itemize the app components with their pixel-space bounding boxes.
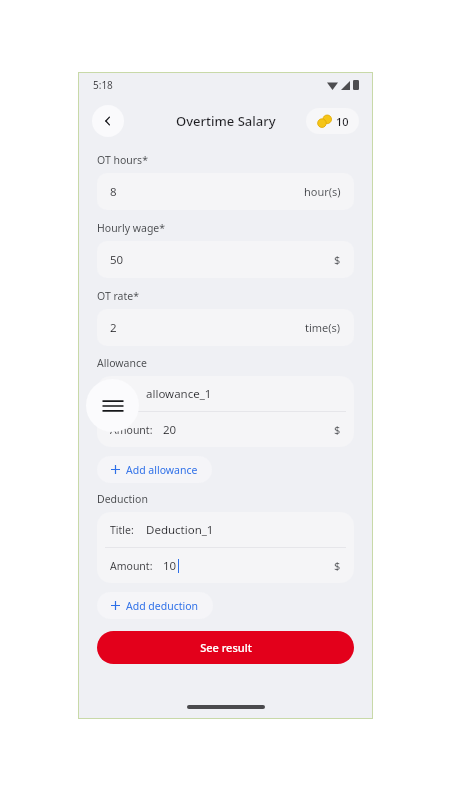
staticText: 5:18 xyxy=(93,78,113,92)
button[interactable]: Add allowance xyxy=(97,456,212,483)
button[interactable]: 8 xyxy=(97,173,354,210)
staticText: 2 xyxy=(110,320,117,336)
staticText: allowance_1 xyxy=(146,386,212,402)
staticText: $ xyxy=(334,252,341,267)
staticText: Title: xyxy=(110,523,134,537)
staticText: Title: xyxy=(110,387,134,401)
button[interactable]: Amount: xyxy=(97,412,354,447)
staticText: Amount: xyxy=(110,559,153,573)
staticText: 8 xyxy=(110,184,117,200)
staticText: $ xyxy=(334,422,341,437)
staticText: Add allowance xyxy=(126,463,198,477)
button[interactable]: Back xyxy=(92,105,124,137)
staticText: $ xyxy=(334,558,341,573)
button[interactable]: 50 xyxy=(97,241,354,278)
staticText: 20 xyxy=(163,422,177,438)
button[interactable]: 10 xyxy=(306,108,359,134)
staticText: OT rate* xyxy=(97,289,139,303)
button[interactable]: Add deduction xyxy=(97,592,213,619)
staticText: OT hours* xyxy=(97,153,148,167)
staticText: Allowance xyxy=(97,356,147,370)
button[interactable]: 2 xyxy=(97,309,354,346)
staticText: Amount: xyxy=(110,423,153,437)
staticText: time(s) xyxy=(305,320,341,335)
staticText: Overtime Salary xyxy=(176,112,276,130)
button[interactable]: Title: xyxy=(97,376,354,411)
staticText: Deduction_1 xyxy=(146,522,214,538)
button[interactable]: Title: xyxy=(97,512,354,547)
staticText: 10 xyxy=(336,114,349,129)
staticText: Hourly wage* xyxy=(97,221,166,235)
staticText: 10 xyxy=(163,558,177,574)
button[interactable]: Reorder allowance xyxy=(86,379,139,432)
button[interactable]: See result xyxy=(97,631,354,664)
staticText: See result xyxy=(200,640,252,655)
staticText: hour(s) xyxy=(304,184,341,199)
button[interactable]: Amount: xyxy=(97,548,354,583)
staticText: 50 xyxy=(110,252,124,268)
staticText: Deduction xyxy=(97,492,148,506)
staticText: Add deduction xyxy=(126,599,199,613)
